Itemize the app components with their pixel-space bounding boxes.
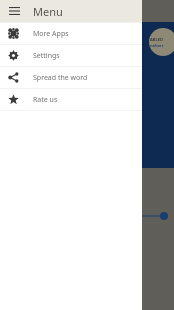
staticText: Menu bbox=[33, 4, 63, 19]
button[interactable]: Settings bbox=[0, 45, 142, 66]
staticText: Spread the word bbox=[33, 73, 88, 83]
button[interactable]: Open navigation menu bbox=[4, 1, 24, 21]
staticText: Settings bbox=[33, 51, 60, 61]
button[interactable]: Rate us bbox=[0, 89, 142, 110]
staticText: More Apps bbox=[33, 29, 69, 39]
button[interactable]: More Apps bbox=[0, 23, 142, 44]
staticText: ABLED bbox=[150, 37, 163, 42]
staticText: nalizer bbox=[150, 43, 164, 48]
staticText: Rate us bbox=[33, 95, 58, 105]
button[interactable]: Spread the word bbox=[0, 67, 142, 88]
